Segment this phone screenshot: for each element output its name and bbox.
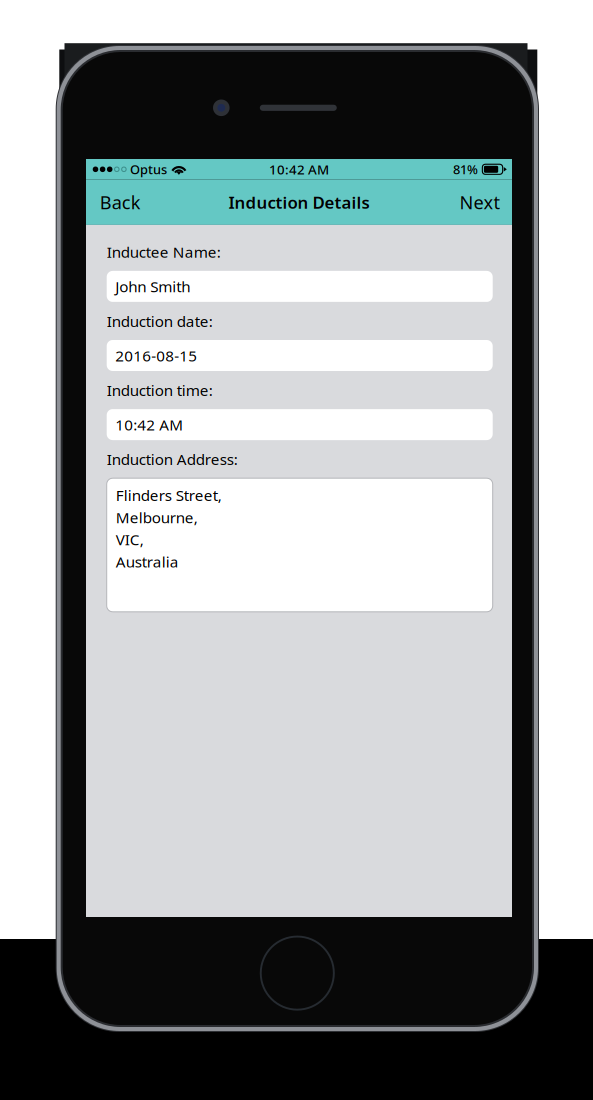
button[interactable]: Back bbox=[86, 180, 151, 225]
staticText: 10:42 AM bbox=[115, 414, 183, 435]
button[interactable]: 2016-08-15 bbox=[107, 340, 493, 371]
staticText: Induction time: bbox=[107, 380, 213, 400]
staticText: Induction Address: bbox=[107, 449, 238, 469]
staticText: 81% bbox=[453, 161, 478, 178]
staticText: Induction date: bbox=[107, 311, 213, 331]
staticText: VIC, bbox=[116, 529, 144, 550]
staticText: 2016-08-15 bbox=[115, 345, 197, 366]
staticText: Induction Details bbox=[228, 191, 369, 214]
staticText: Optus bbox=[130, 161, 167, 178]
staticText: John Smith bbox=[115, 276, 190, 297]
button[interactable]: John Smith bbox=[107, 271, 493, 302]
button[interactable]: Next bbox=[449, 180, 512, 225]
staticText: Back bbox=[100, 190, 141, 215]
button[interactable]: 10:42 AM bbox=[107, 409, 493, 440]
staticText: Flinders Street, bbox=[116, 485, 222, 505]
staticText: Australia bbox=[116, 551, 179, 572]
staticText: Melbourne, bbox=[116, 507, 198, 528]
staticText: Inductee Name: bbox=[107, 241, 221, 262]
button[interactable]: Flinders Street, bbox=[107, 478, 493, 612]
staticText: 10:42 AM bbox=[269, 160, 329, 178]
staticText: Next bbox=[459, 190, 500, 215]
